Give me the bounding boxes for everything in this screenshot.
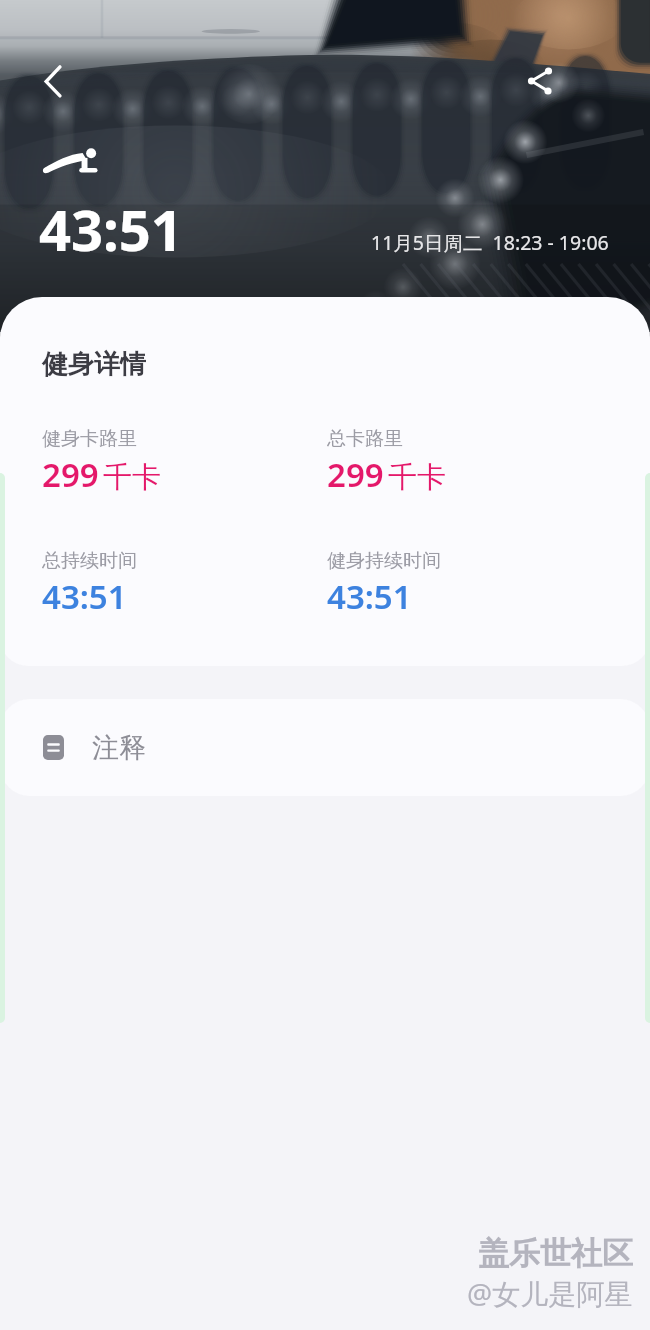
staticText: 299 xyxy=(327,452,384,497)
staticText: 注释 xyxy=(92,731,146,765)
staticText: 健身卡路里 xyxy=(42,427,137,451)
staticText: 299 xyxy=(42,452,99,497)
staticText: 健身持续时间 xyxy=(327,549,441,573)
button[interactable]: Share xyxy=(513,57,561,105)
button[interactable]: 注释 xyxy=(0,699,650,796)
staticText: 43:51 xyxy=(42,574,127,619)
staticText: 总持续时间 xyxy=(42,549,137,573)
staticText: 健身详情 xyxy=(42,348,146,381)
staticText: @女儿是阿星 xyxy=(467,1274,633,1312)
staticText: 千卡 xyxy=(103,459,161,496)
staticText: 千卡 xyxy=(388,459,446,496)
staticText: 11月5日周二 18:23 - 19:06 xyxy=(371,229,609,256)
button[interactable]: Back xyxy=(28,51,74,97)
staticText: 43:51 xyxy=(39,191,183,267)
staticText: 43:51 xyxy=(327,574,412,619)
staticText: 盖乐世社区 xyxy=(478,1234,633,1273)
staticText: 总卡路里 xyxy=(327,427,403,451)
